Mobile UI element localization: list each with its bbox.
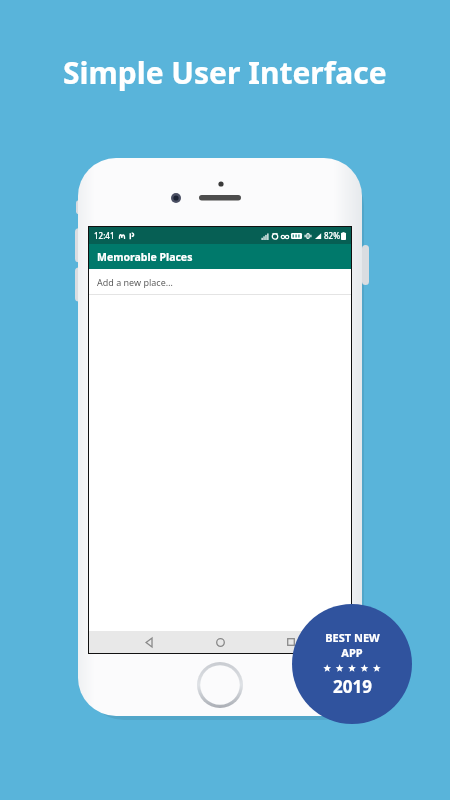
staticText: 2019 [333, 675, 372, 698]
button[interactable]: Back [138, 631, 160, 653]
staticText: Simple User Interface [63, 52, 387, 93]
staticText: BEST NEW [325, 630, 380, 645]
button[interactable]: Best New App 2019 award [292, 604, 412, 724]
button[interactable]: Home [209, 631, 231, 653]
staticText: 82% [324, 230, 340, 241]
staticText: APP [341, 645, 363, 660]
staticText: 12:41 [94, 230, 115, 241]
button[interactable]: Add a new place… [89, 269, 351, 295]
staticText: Add a new place… [97, 276, 173, 288]
button[interactable]: Recents [280, 631, 302, 653]
staticText: Memorable Places [97, 250, 193, 264]
